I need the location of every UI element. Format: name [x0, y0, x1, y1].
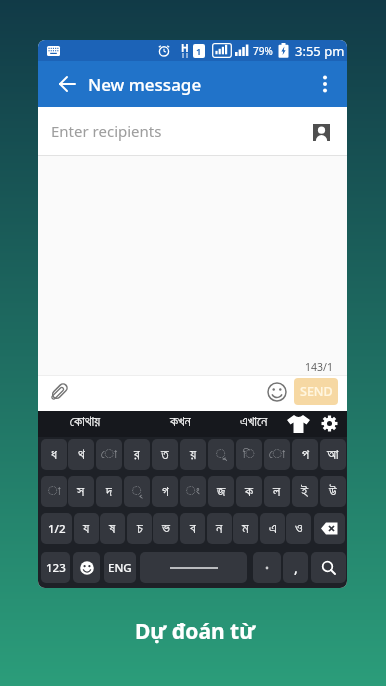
staticText: ষ [109, 522, 116, 536]
button[interactable]: ি [236, 439, 262, 470]
staticText: Enter recipients [51, 121, 162, 141]
button[interactable]: ব [180, 513, 205, 544]
staticText: উ [329, 485, 337, 499]
staticText: থ [78, 448, 85, 462]
button[interactable] [319, 75, 331, 93]
button[interactable]: ক [236, 476, 262, 507]
button[interactable] [321, 415, 338, 432]
button[interactable] [59, 76, 76, 92]
staticText: ু [216, 448, 227, 461]
button[interactable] [140, 552, 247, 583]
button[interactable]: ু [208, 439, 234, 470]
staticText: ন [216, 522, 223, 536]
staticText: New message [88, 73, 202, 96]
staticText: Dự đoán từ [135, 617, 256, 646]
button[interactable]: ন [207, 513, 232, 544]
button[interactable]: া [41, 476, 67, 507]
button[interactable]: ল [264, 476, 290, 507]
staticText: ধ [51, 448, 57, 462]
staticText: কখন [170, 415, 191, 429]
button[interactable] [313, 124, 330, 141]
staticText: 123 [46, 560, 66, 576]
button[interactable]: ENG [104, 552, 136, 583]
staticText: জ [217, 485, 226, 499]
button[interactable]: ো [264, 439, 290, 470]
staticText: ক [245, 485, 253, 499]
staticText: চ [137, 522, 143, 536]
staticText: আ [327, 448, 339, 462]
button[interactable]: এ [260, 513, 285, 544]
staticText: ভ [162, 522, 170, 536]
button[interactable]: ম [233, 513, 258, 544]
button[interactable]: চ [127, 513, 152, 544]
button[interactable]: ৃ [124, 476, 150, 507]
staticText: এ [269, 522, 277, 536]
staticText: কোথায় [70, 415, 101, 429]
staticText: ত [161, 448, 169, 462]
button[interactable]: ও [286, 513, 311, 544]
staticText: , [294, 558, 298, 577]
button[interactable]: ধ [41, 439, 67, 470]
button[interactable]: , [283, 552, 308, 583]
button[interactable]: গ [152, 476, 178, 507]
button[interactable]: ই [292, 476, 318, 507]
button[interactable]: য [74, 513, 99, 544]
staticText: H [181, 41, 189, 55]
button[interactable]: SEND [294, 378, 338, 405]
staticText: 1 [196, 45, 202, 57]
button[interactable]: দ [96, 476, 122, 507]
button[interactable] [253, 552, 281, 583]
button[interactable] [49, 380, 70, 403]
button[interactable]: আ [320, 439, 346, 470]
button[interactable]: য় [180, 439, 206, 470]
staticText: ই [301, 485, 309, 499]
button[interactable] [287, 415, 310, 433]
button[interactable]: ভ [153, 513, 178, 544]
button[interactable] [314, 513, 345, 544]
button[interactable]: স [68, 476, 94, 507]
staticText: গ [162, 485, 169, 499]
button[interactable]: কোথায় [45, 409, 125, 435]
staticText: া [48, 485, 61, 498]
button[interactable]: প [292, 439, 318, 470]
staticText: প [302, 448, 309, 462]
staticText: য় [190, 448, 197, 462]
staticText: 1/2 [48, 521, 66, 537]
staticText: এখানে [240, 415, 268, 429]
staticText: ো [101, 448, 118, 461]
button[interactable] [73, 552, 100, 583]
staticText: 3:55 pm [295, 42, 345, 60]
button[interactable]: থ [68, 439, 94, 470]
button[interactable]: ং [180, 476, 206, 507]
staticText: ENG [108, 560, 132, 576]
button[interactable]: জ [208, 476, 234, 507]
button[interactable]: 1/2 [41, 513, 72, 544]
button[interactable] [267, 382, 287, 402]
staticText: ৃ [132, 485, 143, 498]
staticText: ি [243, 448, 256, 461]
staticText: ব [190, 522, 196, 536]
staticText: ম [242, 522, 249, 536]
staticText: ল [273, 485, 281, 499]
button[interactable]: ত [152, 439, 178, 470]
button[interactable]: ষ [100, 513, 125, 544]
staticText: 143/1 [305, 360, 333, 374]
staticText: SEND [300, 383, 333, 400]
staticText: ো [269, 448, 286, 461]
button[interactable]: র [124, 439, 150, 470]
button[interactable]: ো [96, 439, 122, 470]
staticText: স [77, 485, 85, 499]
button[interactable]: কখন [140, 409, 220, 435]
staticText: ং [186, 485, 200, 498]
button[interactable]: 123 [41, 552, 70, 583]
staticText: 79% [253, 44, 273, 58]
staticText: র [134, 448, 140, 462]
staticText: য [83, 522, 90, 536]
button[interactable]: উ [320, 476, 346, 507]
button[interactable] [311, 552, 346, 583]
button[interactable]: এখানে [214, 409, 294, 435]
staticText: ও [295, 522, 303, 536]
staticText: দ [106, 485, 112, 499]
